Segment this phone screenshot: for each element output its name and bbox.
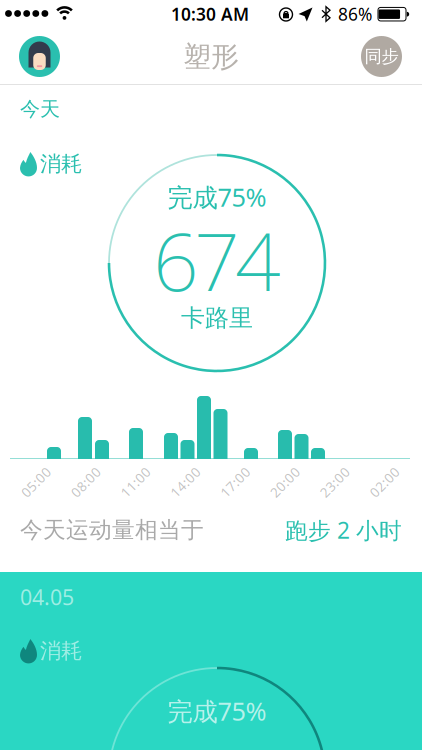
staticText: 674 [153, 207, 281, 313]
button[interactable]: 跑步 2 小时 [285, 515, 402, 545]
staticText: 17:00 [217, 473, 253, 491]
staticText: 消耗 [40, 151, 82, 177]
button[interactable]: 同步 [361, 36, 402, 77]
staticText: 消耗 [40, 638, 82, 664]
staticText: 完成75% [167, 694, 266, 728]
staticText: 今天 [20, 97, 60, 121]
staticText: 86% [338, 2, 372, 25]
staticText: 02:00 [367, 473, 403, 491]
staticText: 11:00 [118, 473, 154, 491]
staticText: 14:00 [167, 473, 203, 491]
staticText: 今天运动量相当于 [20, 516, 204, 544]
staticText: 20:00 [267, 473, 303, 491]
staticText: 05:00 [18, 473, 54, 491]
staticText: 塑形 [183, 40, 239, 74]
button[interactable]: Profile [19, 36, 60, 77]
staticText: 完成75% [167, 180, 266, 214]
staticText: 23:00 [317, 473, 353, 491]
staticText: 卡路里 [181, 303, 253, 333]
staticText: 08:00 [68, 473, 104, 491]
staticText: 04.05 [20, 583, 74, 611]
staticText: 跑步 2 小时 [285, 515, 402, 545]
staticText: 同步 [364, 46, 398, 67]
staticText: 10:30 AM [171, 2, 249, 25]
